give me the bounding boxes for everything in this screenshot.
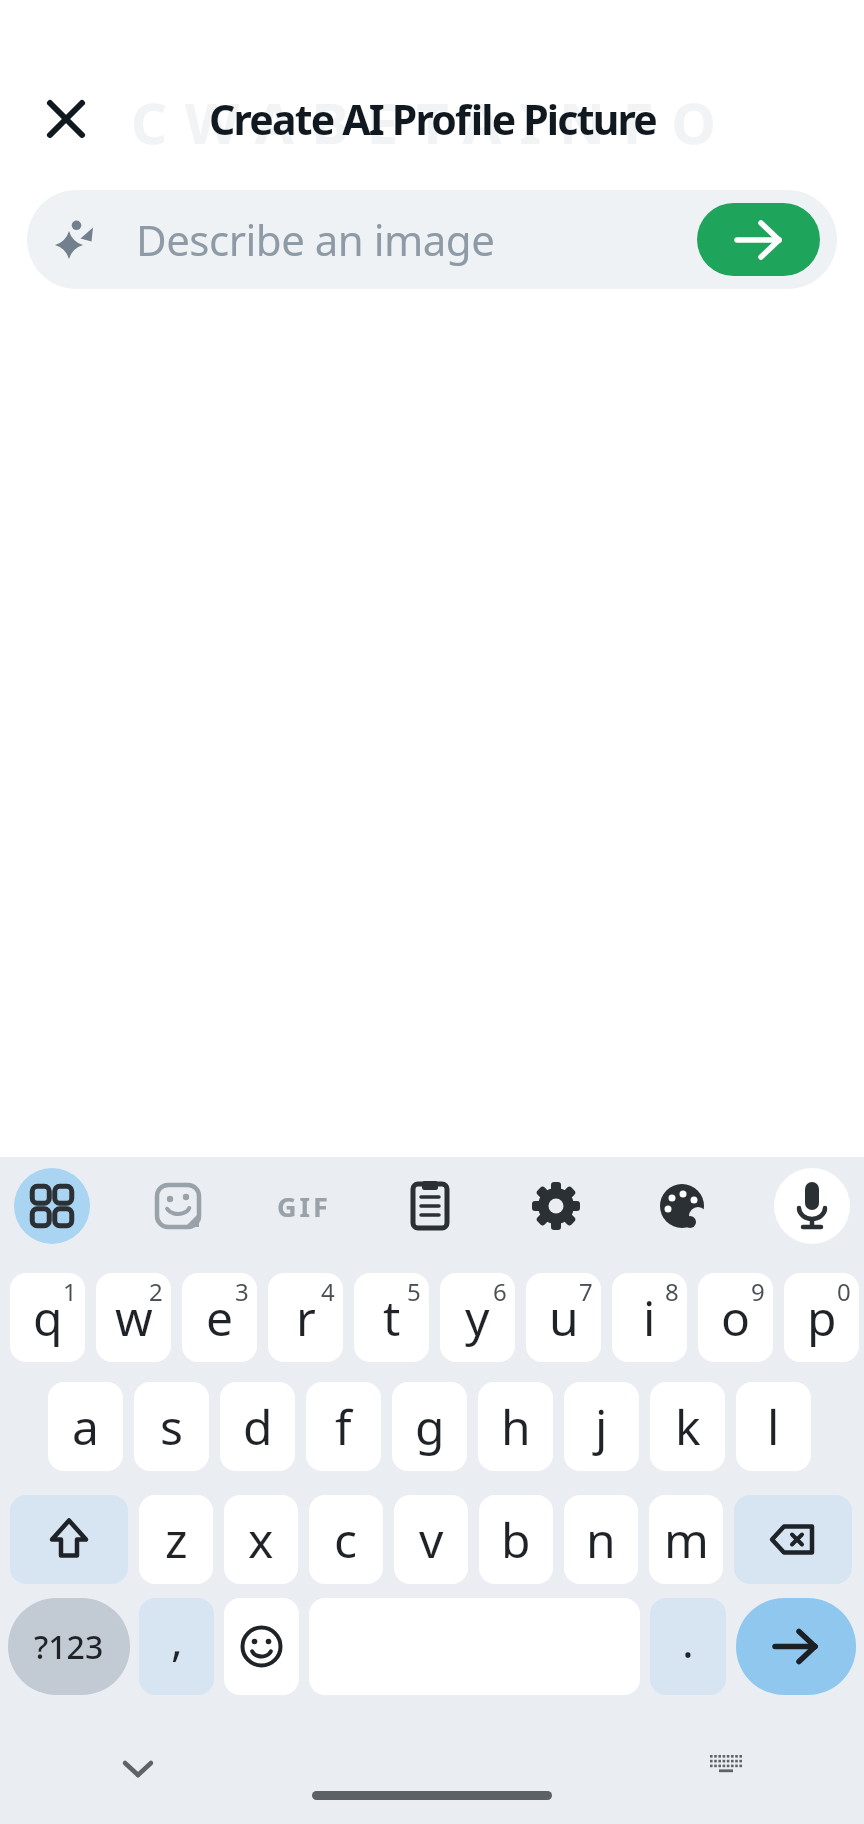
button[interactable]: q <box>10 1273 85 1362</box>
staticText: t <box>383 1285 401 1350</box>
button[interactable]: d <box>220 1382 295 1471</box>
staticText: CWABETAINFO <box>131 84 734 154</box>
staticText: m <box>664 1507 709 1572</box>
staticText: r <box>296 1285 316 1350</box>
button[interactable] <box>224 1598 299 1695</box>
button[interactable] <box>774 1168 850 1244</box>
staticText: Create AI Profile Picture <box>209 91 656 147</box>
button[interactable]: Describe an image <box>27 190 837 289</box>
staticText: j <box>595 1394 608 1459</box>
staticText: 9 <box>751 1275 765 1308</box>
button[interactable]: k <box>650 1382 725 1471</box>
button[interactable] <box>518 1168 594 1244</box>
button[interactable]: f <box>306 1382 381 1471</box>
staticText: q <box>33 1285 63 1350</box>
button[interactable]: w <box>96 1273 171 1362</box>
button[interactable]: t <box>354 1273 429 1362</box>
button[interactable]: , <box>139 1598 214 1695</box>
staticText: b <box>501 1507 531 1572</box>
button[interactable]: r <box>268 1273 343 1362</box>
staticText: l <box>767 1394 780 1459</box>
staticText: 5 <box>407 1275 421 1308</box>
button[interactable]: g <box>392 1382 467 1471</box>
button[interactable] <box>14 1168 90 1244</box>
staticText: d <box>243 1394 273 1459</box>
button[interactable] <box>392 1168 468 1244</box>
button[interactable] <box>736 1598 856 1695</box>
button[interactable]: n <box>564 1495 638 1584</box>
staticText: c <box>334 1507 358 1572</box>
staticText: 3 <box>235 1275 249 1308</box>
button[interactable]: l <box>736 1382 811 1471</box>
staticText: f <box>335 1394 352 1459</box>
staticText: GIF <box>277 1188 331 1225</box>
staticText: p <box>807 1285 837 1350</box>
staticText: 8 <box>665 1275 679 1308</box>
button[interactable]: b <box>479 1495 553 1584</box>
staticText: a <box>72 1394 99 1459</box>
staticText: h <box>501 1394 531 1459</box>
button[interactable]: . <box>650 1598 726 1695</box>
staticText: 0 <box>837 1275 851 1308</box>
staticText: 6 <box>493 1275 507 1308</box>
staticText: o <box>721 1285 751 1350</box>
button[interactable]: v <box>394 1495 468 1584</box>
button[interactable]: j <box>564 1382 639 1471</box>
staticText: . <box>682 1611 694 1671</box>
button[interactable]: ?123 <box>8 1598 130 1695</box>
staticText: w <box>115 1285 153 1350</box>
staticText: 4 <box>321 1275 335 1308</box>
button[interactable]: GIF <box>266 1168 342 1244</box>
button[interactable]: m <box>649 1495 723 1584</box>
staticText: 1 <box>63 1275 77 1308</box>
staticText: y <box>465 1285 490 1350</box>
button[interactable]: x <box>224 1495 298 1584</box>
staticText: e <box>206 1285 234 1350</box>
staticText: Describe an image <box>136 211 495 268</box>
staticText: n <box>586 1507 616 1572</box>
staticText: ?123 <box>34 1625 104 1669</box>
button[interactable] <box>36 89 96 149</box>
button[interactable]: i <box>612 1273 687 1362</box>
button[interactable]: e <box>182 1273 257 1362</box>
button[interactable]: z <box>139 1495 213 1584</box>
staticText: x <box>248 1507 274 1572</box>
button[interactable]: h <box>478 1382 553 1471</box>
staticText: z <box>165 1507 188 1572</box>
button[interactable]: y <box>440 1273 515 1362</box>
button[interactable]: o <box>698 1273 773 1362</box>
button[interactable]: s <box>134 1382 209 1471</box>
staticText: i <box>643 1285 656 1350</box>
staticText: u <box>549 1285 579 1350</box>
button[interactable]: u <box>526 1273 601 1362</box>
button[interactable] <box>697 203 820 276</box>
button[interactable] <box>644 1168 720 1244</box>
button[interactable]: c <box>309 1495 383 1584</box>
button[interactable] <box>140 1168 216 1244</box>
staticText: s <box>160 1394 183 1459</box>
button[interactable] <box>734 1495 852 1584</box>
staticText: v <box>419 1507 444 1572</box>
staticText: 2 <box>149 1275 163 1308</box>
button[interactable] <box>10 1495 128 1584</box>
button[interactable]: a <box>48 1382 123 1471</box>
button[interactable]: p <box>784 1273 859 1362</box>
staticText: , <box>171 1609 183 1669</box>
staticText: 7 <box>579 1275 593 1308</box>
staticText: g <box>415 1394 445 1459</box>
staticText: k <box>675 1394 701 1459</box>
